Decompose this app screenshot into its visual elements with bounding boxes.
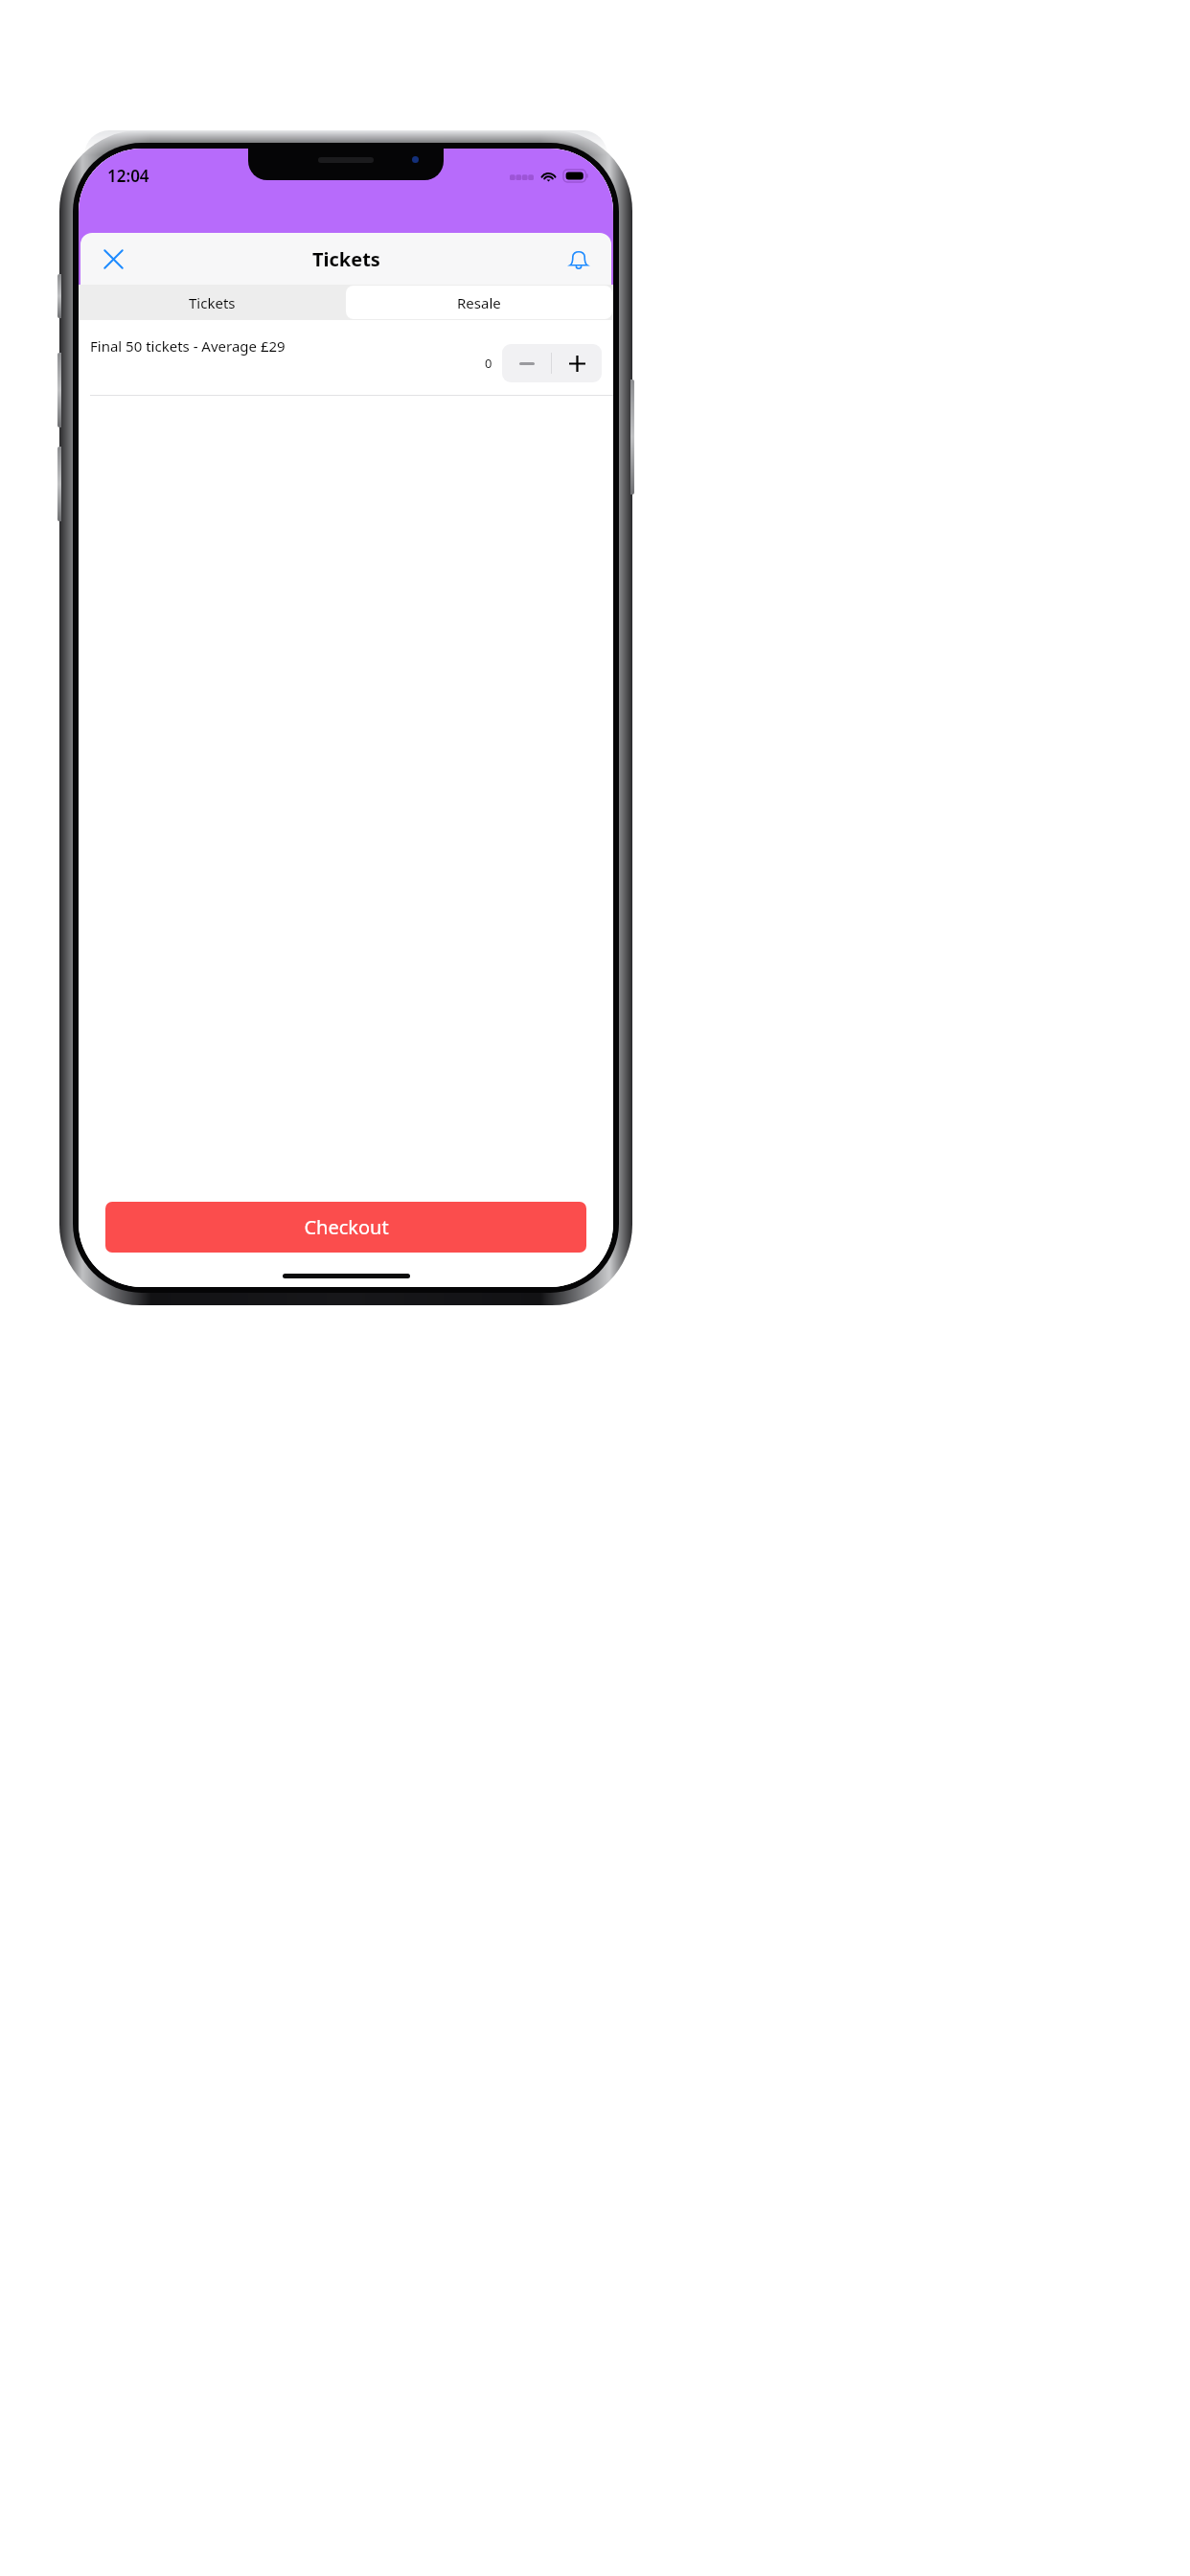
staticText: Resale [457, 293, 501, 312]
button[interactable]: Resale [346, 286, 612, 319]
button[interactable]: Close [92, 238, 134, 280]
button[interactable]: Increase quantity [552, 344, 602, 382]
button[interactable]: Checkout [105, 1202, 586, 1253]
staticText: Final 50 tickets - Average £29 [90, 336, 286, 356]
staticText: Tickets [312, 246, 380, 272]
button[interactable]: Final 50 tickets - Average £29 [79, 320, 613, 395]
staticText: Checkout [304, 1214, 389, 1240]
staticText: 12:04 [107, 165, 149, 187]
staticText: 0 [485, 355, 492, 372]
button[interactable]: Tickets [79, 285, 346, 320]
button[interactable]: Decrease quantity [502, 344, 551, 382]
staticText: Tickets [189, 293, 236, 312]
button[interactable]: Notifications [558, 238, 600, 280]
